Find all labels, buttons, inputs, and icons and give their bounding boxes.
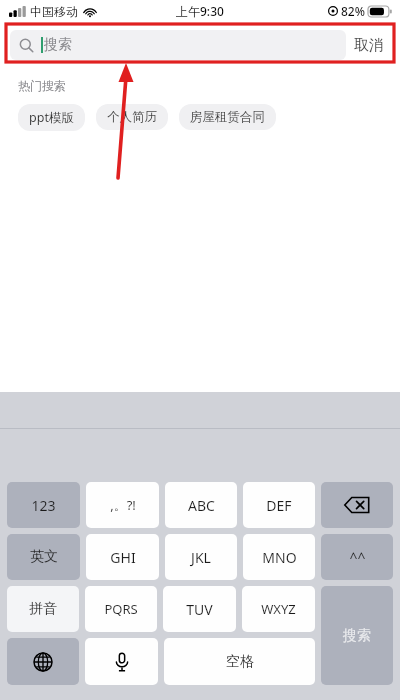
staticText: 搜索 <box>44 36 72 54</box>
button[interactable]: 英文 <box>7 534 80 580</box>
staticText: 82% <box>341 3 365 19</box>
staticText: TUV <box>186 600 213 619</box>
button[interactable]: DEF <box>243 482 315 528</box>
staticText: ^^ <box>349 548 366 567</box>
button[interactable]: GHI <box>86 534 159 580</box>
button[interactable]: Switch keyboard <box>7 638 79 685</box>
staticText: JKL <box>191 548 211 567</box>
button[interactable]: 个人简历 <box>96 104 168 130</box>
staticText: 123 <box>31 496 56 515</box>
staticText: 搜索 <box>343 627 371 645</box>
staticText: ABC <box>188 496 215 515</box>
button[interactable]: PQRS <box>85 586 157 632</box>
button[interactable]: WXYZ <box>242 586 315 632</box>
button[interactable]: ABC <box>165 482 237 528</box>
staticText: ppt模版 <box>29 109 74 126</box>
button[interactable]: Voice input <box>85 638 158 685</box>
button[interactable]: ,。?! <box>86 482 159 528</box>
button[interactable]: 123 <box>7 482 80 528</box>
button[interactable]: TUV <box>163 586 236 632</box>
staticText: ,。?! <box>110 496 136 514</box>
staticText: 上午9:30 <box>176 3 224 19</box>
button[interactable]: Backspace <box>321 482 393 528</box>
staticText: 拼音 <box>29 600 57 618</box>
button[interactable]: ^^ <box>321 534 393 580</box>
staticText: MNO <box>262 548 297 567</box>
staticText: 英文 <box>30 548 58 566</box>
button[interactable]: 房屋租赁合同 <box>179 104 276 130</box>
staticText: PQRS <box>104 600 138 618</box>
staticText: 空格 <box>226 653 254 671</box>
button[interactable]: MNO <box>243 534 315 580</box>
staticText: 热门搜索 <box>18 78 66 93</box>
staticText: GHI <box>110 548 136 567</box>
staticText: DEF <box>266 496 292 515</box>
staticText: 取消 <box>354 36 384 55</box>
staticText: WXYZ <box>261 600 296 618</box>
button[interactable]: 搜索 <box>321 586 393 685</box>
button[interactable]: ppt模版 <box>18 104 85 131</box>
button[interactable]: 空格 <box>164 638 315 685</box>
button[interactable]: 取消 <box>346 30 392 61</box>
button[interactable]: 拼音 <box>7 586 79 632</box>
staticText: 中国移动 <box>30 4 78 19</box>
button[interactable]: JKL <box>165 534 237 580</box>
staticText: 个人简历 <box>107 109 157 125</box>
button[interactable]: 搜索 <box>10 30 346 60</box>
staticText: 房屋租赁合同 <box>190 109 265 125</box>
